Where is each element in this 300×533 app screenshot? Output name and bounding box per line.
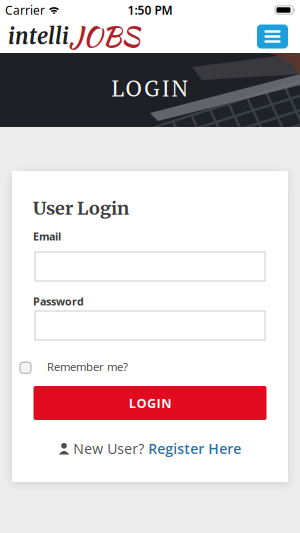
button[interactable]: LOGIN (33, 386, 266, 420)
staticText: 1:50 PM (127, 2, 172, 18)
staticText: User Login (33, 197, 129, 220)
staticText: LOGIN (129, 394, 171, 412)
staticText: New User? (73, 439, 144, 458)
staticText: G (144, 73, 160, 103)
staticText: JOBS (69, 17, 140, 56)
button[interactable]: Remember me? (20, 359, 128, 374)
staticText: Remember me? (47, 359, 128, 374)
button[interactable]: Menu (257, 24, 288, 48)
staticText: intelli (8, 23, 69, 50)
button[interactable]: Password field (35, 311, 265, 340)
staticText: Email (33, 229, 61, 243)
staticText: L (111, 73, 123, 103)
staticText: O (125, 73, 142, 103)
staticText: Carrier (5, 2, 45, 18)
staticText: I (162, 73, 170, 103)
staticText: Register Here (148, 439, 241, 458)
button[interactable]: Email field (35, 252, 265, 281)
button[interactable]: New User? (12, 439, 288, 458)
staticText: N (172, 73, 189, 103)
staticText: Password (33, 294, 84, 308)
